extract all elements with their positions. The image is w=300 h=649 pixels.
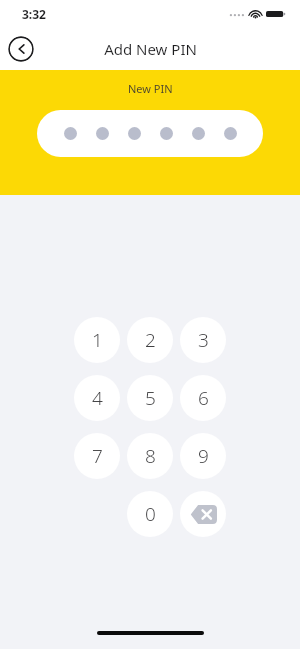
button[interactable]: 0 — [127, 491, 173, 537]
staticText: 8 — [145, 443, 156, 469]
button[interactable]: 7 — [74, 433, 120, 479]
staticText: 3:32 — [22, 6, 46, 22]
button[interactable]: 9 — [180, 433, 226, 479]
button[interactable]: 6 — [180, 375, 226, 421]
staticText: 0 — [145, 501, 156, 527]
staticText: 5 — [145, 385, 156, 411]
button[interactable]: 2 — [127, 317, 173, 363]
staticText: 7 — [92, 443, 103, 469]
staticText: 2 — [145, 327, 156, 353]
staticText: 3 — [198, 327, 209, 353]
button[interactable]: 4 — [74, 375, 120, 421]
staticText: 4 — [92, 385, 103, 411]
button[interactable]: 8 — [127, 433, 173, 479]
button[interactable]: Back — [8, 36, 34, 62]
staticText: 6 — [198, 385, 209, 411]
button[interactable]: 1 — [74, 317, 120, 363]
button[interactable]: Backspace — [180, 491, 226, 537]
button[interactable]: 5 — [127, 375, 173, 421]
button[interactable]: 3 — [180, 317, 226, 363]
staticText: 1 — [92, 327, 103, 353]
staticText: 9 — [198, 443, 209, 469]
staticText: Add New PIN — [104, 39, 197, 59]
staticText: New PIN — [128, 81, 173, 96]
